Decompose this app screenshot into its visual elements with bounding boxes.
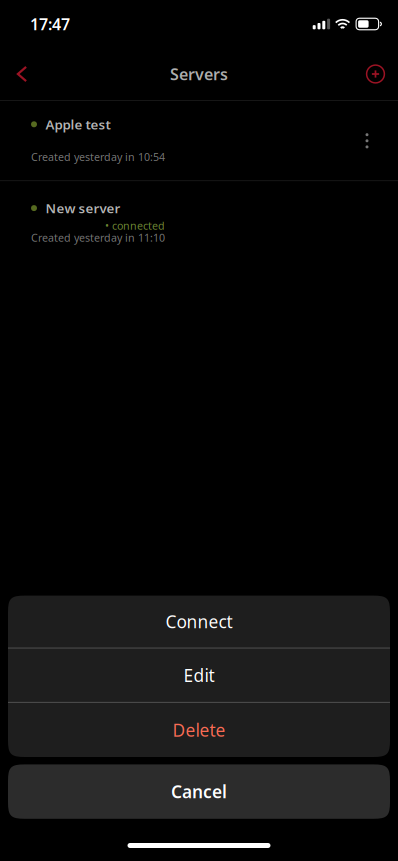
button[interactable]: Apple test [0,101,398,180]
staticText: 17:47 [30,13,70,35]
staticText: Created yesterday in 10:54 [31,150,165,164]
button[interactable]: Back [5,52,38,96]
staticText: Cancel [171,780,227,803]
button[interactable]: Cancel [8,764,390,819]
staticText: New server [46,199,121,217]
staticText: Edit [183,664,214,687]
staticText: Servers [170,63,228,85]
button[interactable]: Edit [8,648,390,702]
staticText: • connected [105,218,165,233]
button[interactable]: Connect [8,596,390,648]
staticText: Connect [165,610,232,633]
button[interactable]: Add server [359,52,392,96]
button[interactable]: More options [351,130,383,152]
staticText: Apple test [46,115,111,133]
button[interactable]: Delete [8,703,390,757]
button[interactable]: New server [0,181,398,253]
staticText: Created yesterday in 11:10 [31,230,165,245]
staticText: Delete [172,718,225,741]
